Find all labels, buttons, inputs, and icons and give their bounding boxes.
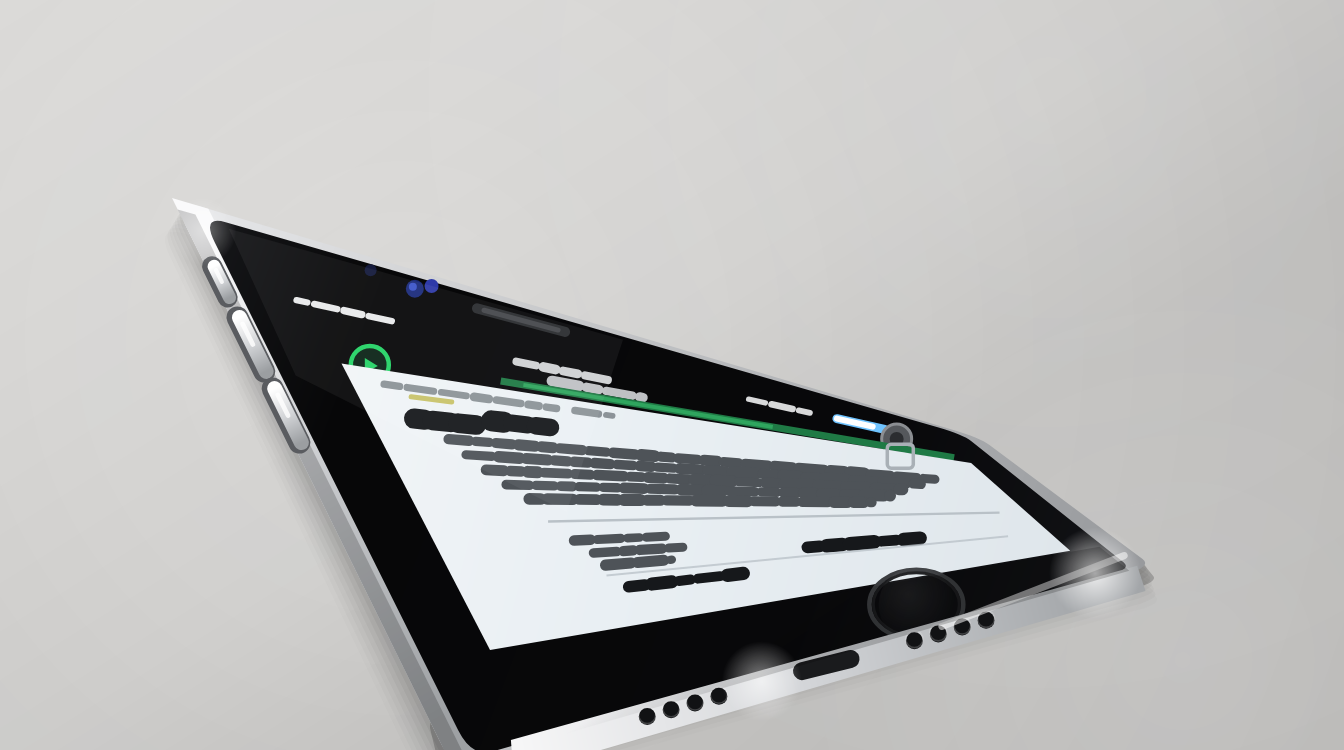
button[interactable]: Phone product photo <box>0 0 1344 750</box>
